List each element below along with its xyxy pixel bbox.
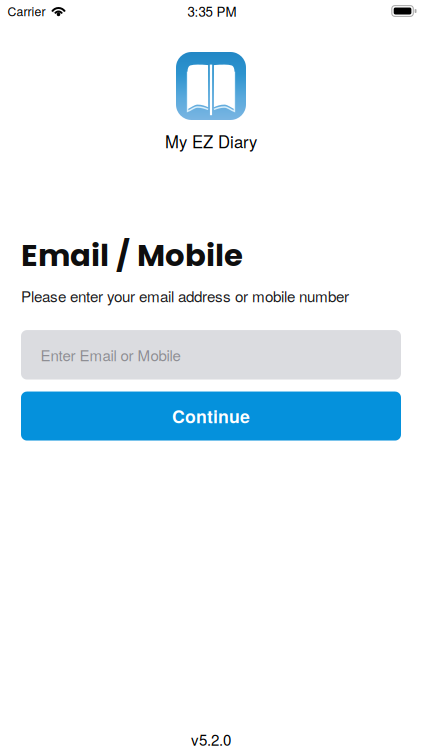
staticText: Carrier [7,2,45,20]
staticText: Email / Mobile [21,234,243,277]
staticText: Please enter your email address or mobil… [21,285,349,307]
staticText: Continue [172,403,250,429]
staticText: 3:35 PM [187,1,236,21]
staticText: v5.2.0 [191,728,231,750]
staticText: My EZ Diary [165,129,257,153]
staticText: Enter Email or Mobile [40,344,180,366]
button[interactable]: Continue [21,392,401,441]
